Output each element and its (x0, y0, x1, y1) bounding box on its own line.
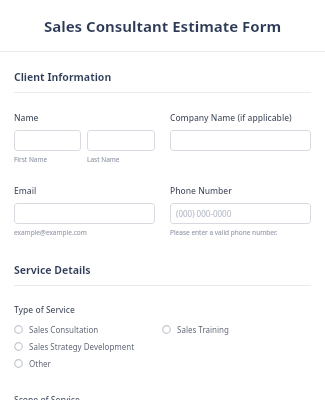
staticText: Sales Strategy Development (29, 341, 135, 352)
staticText: example@example.com (14, 228, 87, 237)
button[interactable]: Other (14, 355, 51, 372)
button[interactable] (87, 130, 155, 151)
staticText: Phone Number (170, 185, 232, 197)
staticText: Sales Training (177, 324, 229, 335)
button[interactable]: Sales Strategy Development (14, 338, 135, 355)
button[interactable]: Sales Training (162, 321, 229, 338)
staticText: Sales Consultant Estimate Form (8, 16, 317, 36)
staticText: (000) 000-0000 (176, 208, 232, 219)
button[interactable]: Sales Consultation (14, 321, 99, 338)
staticText: Client Information (14, 70, 112, 84)
staticText: Other (29, 358, 51, 369)
button[interactable] (14, 130, 81, 151)
button[interactable] (14, 203, 155, 224)
button[interactable]: (000) 000-0000 (170, 203, 311, 224)
staticText: Please enter a valid phone number. (170, 228, 278, 237)
staticText: Scope of Service (14, 394, 80, 400)
button[interactable] (170, 130, 311, 151)
staticText: First Name (14, 155, 48, 164)
staticText: Type of Service (14, 304, 75, 316)
staticText: Company Name (if applicable) (170, 112, 292, 124)
staticText: Sales Consultation (29, 324, 99, 335)
staticText: Name (14, 112, 39, 124)
staticText: Service Details (14, 263, 91, 277)
staticText: Last Name (87, 155, 120, 164)
staticText: Email (14, 185, 37, 197)
